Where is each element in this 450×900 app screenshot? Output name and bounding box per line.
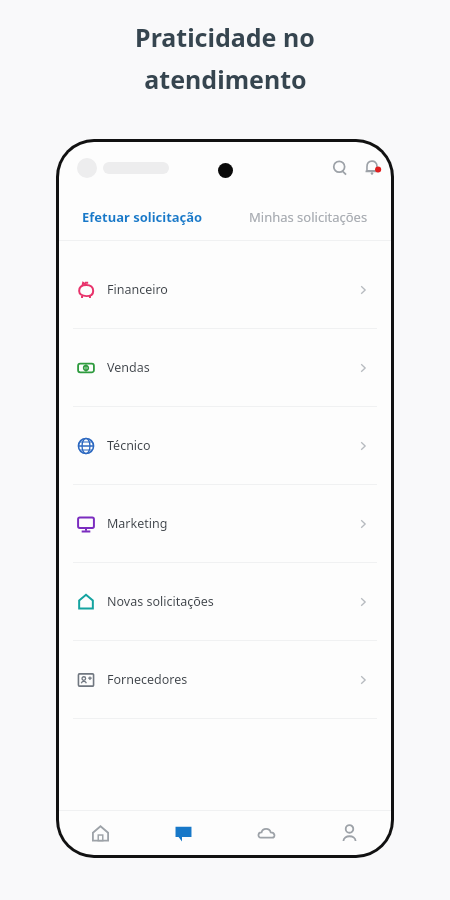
button[interactable]: Notifications [359, 155, 385, 181]
button[interactable]: Messages [142, 811, 225, 855]
staticText: Efetuar solicitação [82, 208, 203, 226]
staticText: Minhas solicitações [249, 208, 368, 226]
button[interactable]: Técnico [59, 407, 391, 484]
button[interactable]: Vendas [59, 329, 391, 406]
button[interactable]: Efetuar solicitação [59, 194, 225, 240]
staticText: Técnico [107, 437, 151, 454]
staticText: atendimento [144, 62, 307, 96]
staticText: Praticidade no [135, 20, 315, 54]
button[interactable]: Minhas solicitações [225, 194, 391, 240]
button[interactable]: Profile [308, 811, 391, 855]
staticText: Fornecedores [107, 671, 188, 688]
button[interactable]: Novas solicitações [59, 563, 391, 640]
button[interactable]: Search [327, 155, 353, 181]
button[interactable]: Fornecedores [59, 641, 391, 718]
button[interactable]: Cloud [225, 811, 308, 855]
staticText: Vendas [107, 359, 150, 376]
button[interactable]: Marketing [59, 485, 391, 562]
staticText: Marketing [107, 515, 168, 532]
button[interactable]: Home [59, 811, 142, 855]
staticText: Novas solicitações [107, 593, 214, 610]
button[interactable]: Financeiro [59, 251, 391, 328]
staticText: Financeiro [107, 281, 168, 298]
